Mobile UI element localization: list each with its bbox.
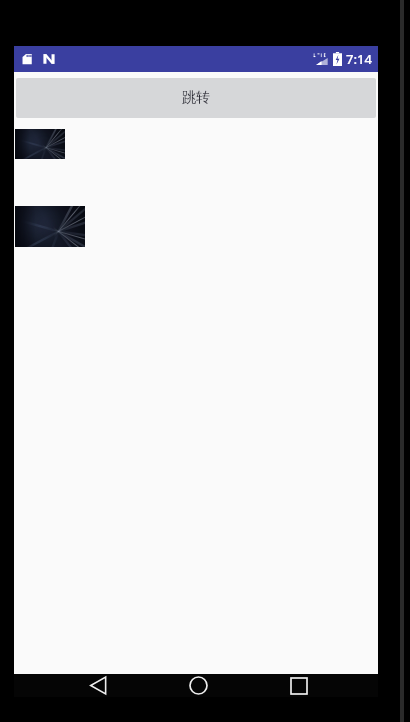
button[interactable]: 跳转 bbox=[16, 78, 376, 118]
button[interactable]: Back bbox=[74, 674, 122, 697]
button[interactable]: Home bbox=[174, 674, 222, 697]
button[interactable]: Image 2 bbox=[15, 206, 85, 247]
button[interactable]: Recents bbox=[275, 674, 323, 697]
staticText: 跳转 bbox=[182, 89, 210, 107]
button[interactable]: Image 1 bbox=[15, 129, 65, 159]
staticText: 7:14 bbox=[346, 50, 372, 68]
